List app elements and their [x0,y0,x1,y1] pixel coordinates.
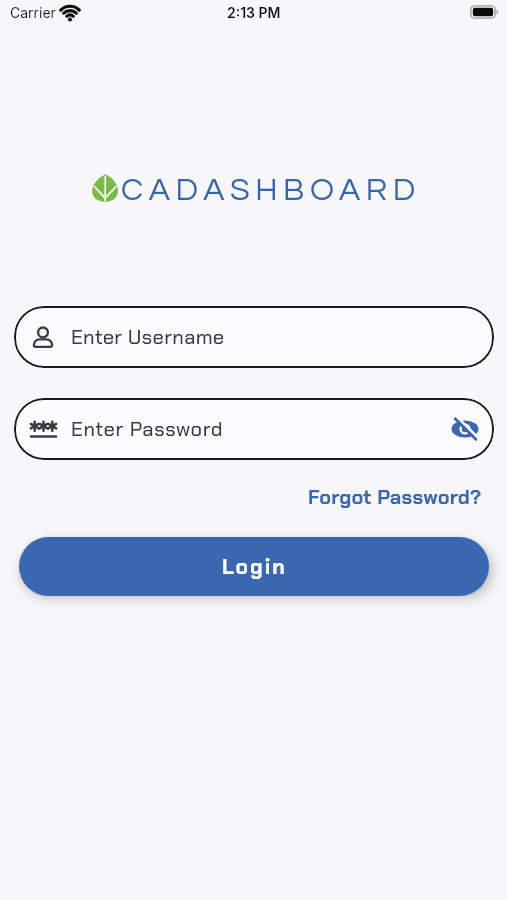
staticText: Enter Username [71,324,225,350]
button[interactable]: Enter Username [14,306,494,368]
staticText: CADASHBOARD [121,174,421,207]
staticText: Carrier [10,4,56,21]
staticText: 2:13 PM [227,4,281,21]
button[interactable]: Enter Password [14,398,494,460]
button[interactable]: Forgot Password? [308,484,482,510]
staticText: Forgot Password? [308,484,482,510]
button[interactable]: Login [19,537,489,596]
staticText: Login [222,553,287,580]
staticText: Enter Password [71,416,224,442]
